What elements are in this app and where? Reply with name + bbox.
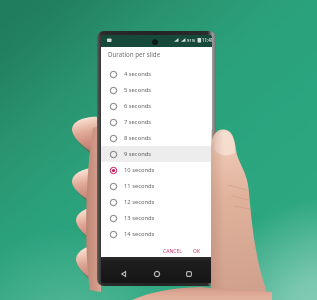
staticText: 91% (187, 38, 196, 44)
button[interactable]: 10 seconds (101, 162, 212, 178)
button[interactable]: 4 seconds (101, 66, 212, 82)
button[interactable]: 13 seconds (101, 210, 212, 226)
staticText: 7 seconds (124, 118, 152, 126)
staticText: 11 seconds (124, 182, 155, 190)
button[interactable]: Home (148, 265, 166, 283)
button[interactable]: 9 seconds (101, 146, 212, 162)
button[interactable]: 5 seconds (101, 82, 212, 98)
button[interactable]: CANCEL (161, 246, 184, 257)
staticText: 5 seconds (124, 86, 152, 94)
staticText: 11:49 (202, 37, 212, 43)
staticText: CANCEL (163, 248, 182, 255)
staticText: 6 seconds (124, 102, 152, 110)
staticText: 8 seconds (124, 134, 152, 142)
button[interactable]: Recents (180, 265, 198, 283)
button[interactable]: Back (115, 265, 133, 283)
button[interactable]: 8 seconds (101, 130, 212, 146)
button[interactable]: 6 seconds (101, 98, 212, 114)
staticText: Duration per slide (108, 50, 161, 58)
staticText: 13 seconds (124, 214, 155, 222)
button[interactable]: 12 seconds (101, 194, 212, 210)
staticText: 4 seconds (124, 70, 152, 78)
button[interactable]: 14 seconds (101, 226, 212, 242)
staticText: 14 seconds (124, 230, 155, 238)
button[interactable]: OK (191, 246, 203, 257)
button[interactable]: 11 seconds (101, 178, 212, 194)
staticText: 9 seconds (124, 150, 152, 158)
staticText: OK (193, 248, 201, 255)
staticText: 12 seconds (124, 198, 155, 206)
staticText: 10 seconds (124, 166, 155, 174)
button[interactable]: 7 seconds (101, 114, 212, 130)
